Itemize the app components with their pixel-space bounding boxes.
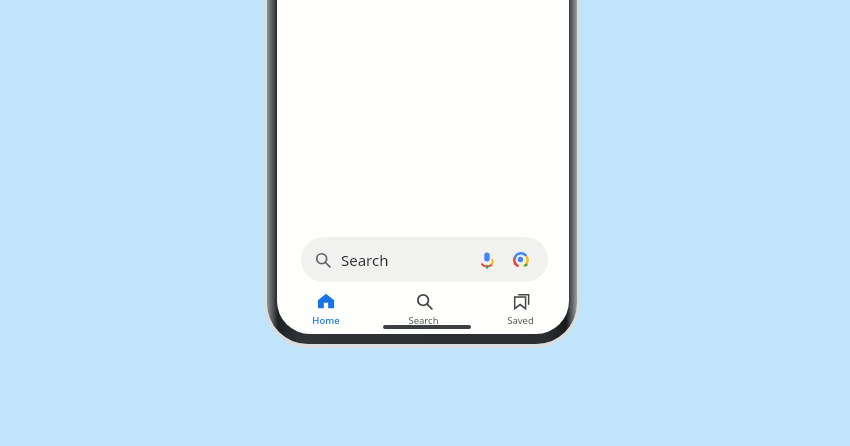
button[interactable]: Home [277, 288, 375, 326]
button[interactable]: Search [301, 237, 548, 282]
staticText: Saved [507, 314, 534, 326]
button[interactable]: Search [375, 288, 472, 326]
button[interactable]: Voice search [474, 247, 500, 273]
button[interactable]: Saved [472, 288, 569, 326]
staticText: Home [312, 314, 340, 326]
button[interactable]: Google Lens [508, 247, 534, 273]
staticText: Search [408, 314, 439, 326]
staticText: Search [341, 250, 389, 270]
